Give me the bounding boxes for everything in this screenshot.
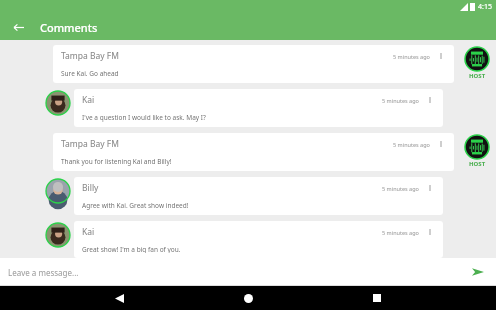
staticText: 5 minutes ago <box>382 229 419 236</box>
staticText: Tampa Bay FM <box>61 50 393 62</box>
staticText: I've a question I would like to ask. May… <box>82 113 206 122</box>
staticText: 5 minutes ago <box>382 185 419 192</box>
staticText: 5 minutes ago <box>382 97 419 104</box>
button[interactable]: Back <box>8 17 28 37</box>
button[interactable]: Billy <box>74 177 443 215</box>
button[interactable]: Kai <box>74 221 443 258</box>
staticText: Thank you for listening Kai and Billy! <box>61 157 172 166</box>
staticText: Agree with Kai. Great show indeed! <box>82 201 189 210</box>
button[interactable]: Leave a message... <box>8 267 468 278</box>
staticText: Billy <box>82 182 382 194</box>
button[interactable]: Recents <box>367 288 387 308</box>
staticText: Kai <box>82 226 382 238</box>
staticText: Kai <box>82 94 382 106</box>
staticText: 5 minutes ago <box>393 53 430 60</box>
staticText: HOST <box>469 72 486 80</box>
button[interactable]: Back <box>109 288 129 308</box>
button[interactable]: Tampa Bay FM <box>53 45 454 83</box>
button[interactable]: More options <box>436 51 446 61</box>
staticText: HOST <box>469 160 486 168</box>
staticText: 5 minutes ago <box>393 141 430 148</box>
staticText: Leave a message... <box>8 267 79 278</box>
button[interactable]: More options <box>425 227 435 237</box>
staticText: 4:15 <box>478 2 492 12</box>
button[interactable]: Tampa Bay FM <box>53 133 454 171</box>
staticText: Great show! I'm a big fan of you. <box>82 245 181 253</box>
staticText: Tampa Bay FM <box>61 138 393 150</box>
button[interactable]: More options <box>436 139 446 149</box>
button[interactable]: Kai <box>74 89 443 127</box>
staticText: Sure Kai. Go ahead <box>61 69 119 78</box>
staticText: Comments <box>40 20 98 35</box>
button[interactable]: More options <box>425 95 435 105</box>
button[interactable]: Home <box>238 288 258 308</box>
button[interactable]: More options <box>425 183 435 193</box>
button[interactable]: Send <box>468 262 488 282</box>
